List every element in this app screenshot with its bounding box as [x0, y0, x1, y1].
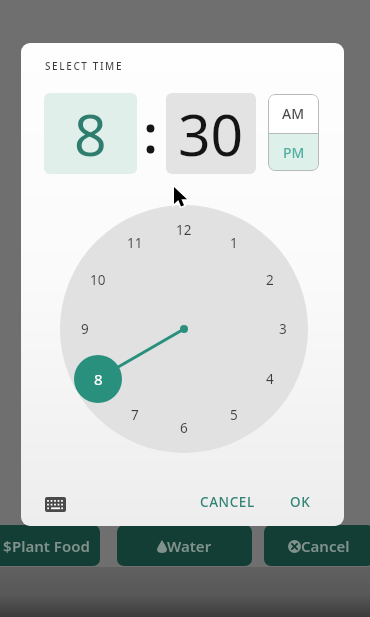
staticText: 5	[230, 406, 238, 424]
staticText: 30	[178, 95, 244, 173]
staticText: Water	[167, 536, 212, 556]
staticText: Cancel	[301, 536, 350, 556]
staticText: Plant Food	[12, 536, 90, 556]
button[interactable]: OK	[270, 483, 330, 521]
staticText: SELECT TIME	[45, 59, 124, 73]
staticText: 12	[176, 221, 192, 239]
staticText: 10	[90, 271, 106, 289]
button[interactable]: CANCEL	[186, 483, 268, 521]
staticText: $	[3, 536, 12, 556]
button[interactable]: 8	[74, 355, 122, 403]
button[interactable]: AM	[268, 94, 319, 133]
staticText: 8	[94, 369, 103, 389]
button[interactable]	[35, 487, 75, 521]
staticText: PM	[283, 143, 305, 162]
button[interactable]: $	[0, 525, 100, 566]
button[interactable]: 30	[166, 93, 256, 174]
staticText: 8	[74, 95, 107, 173]
button[interactable]: Water	[117, 525, 252, 566]
staticText: 11	[127, 234, 143, 252]
staticText: 3	[279, 320, 287, 338]
staticText: 7	[131, 406, 139, 424]
staticText: OK	[290, 493, 311, 511]
staticText: 2	[266, 271, 274, 289]
button[interactable]: 8	[44, 93, 137, 174]
staticText: 1	[230, 234, 238, 252]
staticText: AM	[282, 104, 305, 123]
staticText: CANCEL	[200, 493, 255, 511]
staticText: 6	[180, 419, 188, 437]
staticText: 9	[81, 320, 89, 338]
button[interactable]: PM	[268, 134, 319, 171]
staticText: 4	[266, 370, 274, 388]
button[interactable]: Cancel	[264, 525, 370, 566]
